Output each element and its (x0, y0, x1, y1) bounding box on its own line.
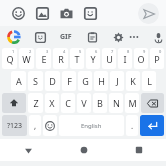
staticText: C (65, 97, 71, 109)
staticText: H (98, 75, 105, 87)
button[interactable]: Emoji (43, 115, 57, 136)
button[interactable]: GIF (58, 29, 74, 45)
button[interactable]: X (45, 93, 59, 113)
staticText: K (130, 75, 136, 87)
button[interactable]: Period (126, 115, 138, 136)
button[interactable]: W (19, 48, 34, 69)
button[interactable]: F (62, 71, 76, 91)
button[interactable]: C (61, 93, 75, 113)
staticText: D (49, 75, 56, 87)
staticText: 3 (46, 49, 49, 54)
button[interactable]: O (134, 48, 148, 69)
staticText: X (49, 97, 55, 109)
staticText: 8 (127, 49, 130, 54)
staticText: , (34, 120, 37, 131)
staticText: I (123, 53, 127, 65)
staticText: 4 (63, 49, 66, 54)
staticText: N (113, 97, 120, 109)
button[interactable]: G (78, 71, 92, 91)
staticText: E (41, 53, 47, 65)
button[interactable]: ?123 (2, 115, 27, 136)
button[interactable]: K (126, 71, 140, 91)
button[interactable]: T (70, 48, 84, 69)
button[interactable]: Voice input (150, 29, 166, 45)
button[interactable]: Q (2, 48, 17, 69)
staticText: U (106, 53, 113, 65)
button[interactable]: Comma (29, 115, 41, 136)
staticText: J (116, 75, 119, 87)
staticText: English (81, 122, 102, 130)
button[interactable]: M (125, 93, 139, 113)
staticText: Q (6, 53, 14, 65)
button[interactable]: Recent apps (111, 139, 166, 161)
staticText: T (74, 53, 80, 65)
staticText: 0 (159, 49, 162, 54)
staticText: F (67, 75, 72, 87)
button[interactable]: I (118, 48, 132, 69)
button[interactable]: B (93, 93, 107, 113)
button[interactable]: E (36, 48, 51, 69)
staticText: S (33, 75, 38, 87)
button[interactable]: Backspace (141, 93, 164, 113)
button[interactable]: Space: English (59, 115, 124, 136)
button[interactable]: Back (0, 139, 56, 161)
staticText: O (137, 53, 145, 65)
button[interactable]: Gallery (30, 1, 54, 25)
button[interactable]: Y (86, 48, 100, 69)
button[interactable]: Enter (140, 115, 164, 136)
button[interactable]: Settings (110, 29, 126, 45)
button[interactable]: Stickers (32, 29, 48, 45)
staticText: L (147, 75, 152, 87)
staticText: V (81, 97, 87, 109)
button[interactable]: N (109, 93, 123, 113)
button[interactable]: Home (56, 139, 111, 161)
button[interactable]: U (102, 48, 116, 69)
staticText: P (154, 53, 160, 65)
button[interactable]: V (77, 93, 91, 113)
button[interactable]: H (94, 71, 108, 91)
button[interactable]: Camera (54, 1, 78, 25)
button[interactable]: Google (6, 29, 22, 45)
staticText: A (16, 75, 22, 87)
staticText: 1 (12, 49, 15, 54)
staticText: W (22, 53, 31, 65)
staticText: B (97, 97, 103, 109)
button[interactable]: Emoji (6, 1, 30, 25)
button[interactable]: A (11, 71, 26, 91)
button[interactable]: S (28, 71, 43, 91)
staticText: 5 (79, 49, 82, 54)
button[interactable]: More options (126, 29, 142, 45)
button[interactable]: Z (28, 93, 43, 113)
button[interactable]: J (110, 71, 124, 91)
staticText: 6 (95, 49, 98, 54)
button[interactable]: Shift (2, 93, 26, 113)
button[interactable]: R (53, 48, 68, 69)
staticText: Z (33, 97, 39, 109)
staticText: 2 (29, 49, 32, 54)
staticText: G (82, 75, 89, 87)
staticText: R (58, 53, 64, 65)
button[interactable]: Stickers (78, 1, 102, 25)
button[interactable]: Send (138, 3, 159, 24)
staticText: 9 (143, 49, 146, 54)
staticText: 7 (111, 49, 114, 54)
staticText: Y (90, 53, 96, 65)
staticText: . (131, 120, 134, 131)
staticText: GIF (60, 32, 72, 42)
button[interactable]: D (45, 71, 60, 91)
button[interactable]: Clipboard (84, 29, 100, 45)
button[interactable]: L (142, 71, 156, 91)
staticText: ?123 (7, 121, 23, 131)
button[interactable]: P (150, 48, 164, 69)
staticText: M (128, 97, 137, 109)
